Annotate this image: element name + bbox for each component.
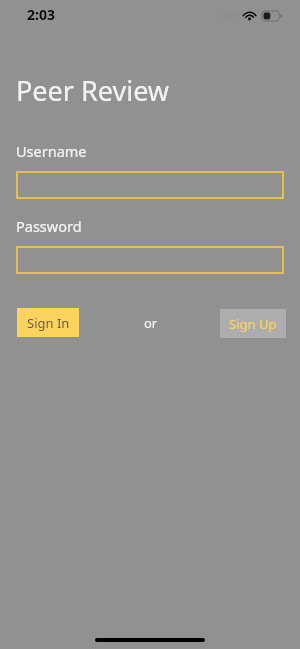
staticText: Sign In <box>27 314 70 332</box>
staticText: Peer Review <box>16 72 170 109</box>
staticText: or <box>144 314 158 332</box>
staticText: 2:03 <box>27 5 55 24</box>
button[interactable]: Sign In <box>17 308 79 337</box>
staticText: Sign Up <box>229 315 277 333</box>
button[interactable]: Sign Up <box>220 309 286 338</box>
staticText: Password <box>16 216 82 236</box>
staticText: Username <box>16 141 87 161</box>
button[interactable] <box>16 171 284 199</box>
button[interactable] <box>16 246 284 274</box>
